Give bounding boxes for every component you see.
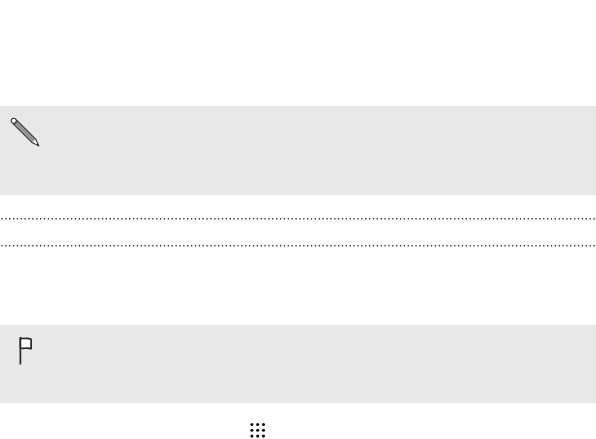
- other: Edit: [10, 117, 41, 148]
- button[interactable]: Edit: [0, 106, 596, 195]
- other: Divider: [0, 245, 596, 248]
- button[interactable]: Apps: [245, 416, 269, 439]
- button[interactable]: Flag: [0, 325, 596, 403]
- other: Flag: [18, 336, 34, 352]
- other: Divider: [0, 218, 596, 221]
